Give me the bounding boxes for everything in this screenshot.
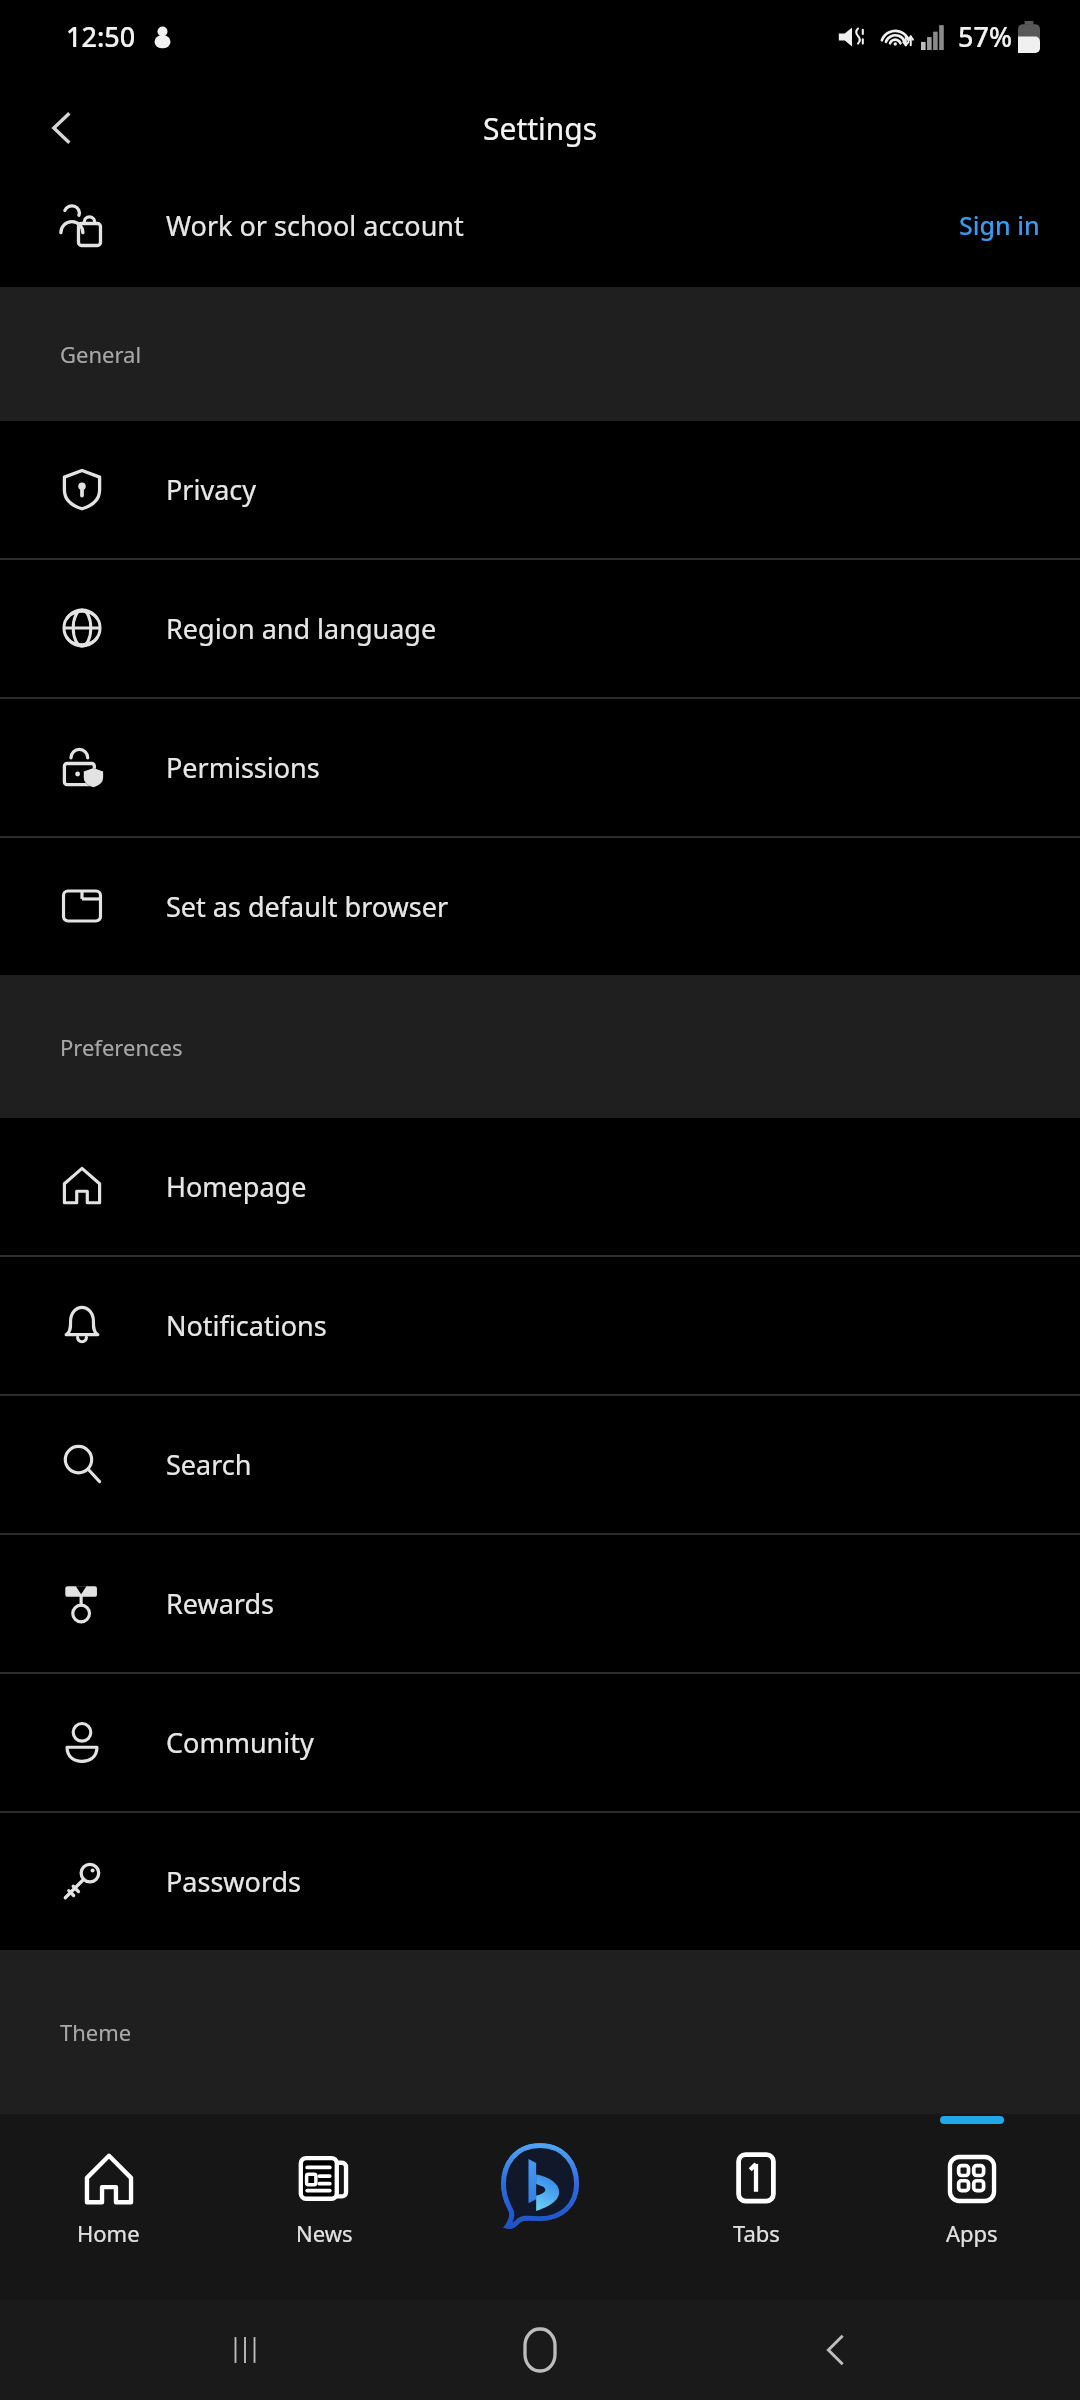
button[interactable]: Homepage xyxy=(0,1118,1080,1255)
staticText: Privacy xyxy=(166,471,257,508)
staticText: Work or school account xyxy=(166,207,464,244)
staticText: Theme xyxy=(60,2017,132,2047)
staticText: Search xyxy=(166,1446,252,1483)
staticText: Apps xyxy=(946,2218,998,2248)
button[interactable]: Search xyxy=(0,1396,1080,1533)
button[interactable]: Work or school account xyxy=(0,184,1080,287)
button[interactable]: Permissions xyxy=(0,699,1080,836)
staticText: General xyxy=(60,339,142,369)
staticText: 57% xyxy=(958,18,1012,55)
button[interactable]: Passwords xyxy=(0,1813,1080,1950)
staticText: Sign in xyxy=(959,208,1040,242)
staticText: Set as default browser xyxy=(166,888,449,925)
button[interactable]: Home xyxy=(490,2300,590,2400)
staticText: 12:50 xyxy=(66,18,136,55)
staticText: Preferences xyxy=(60,1032,183,1062)
button[interactable]: Back xyxy=(20,86,104,170)
button[interactable]: Copilot xyxy=(432,2114,648,2300)
button[interactable]: Home xyxy=(0,2114,216,2300)
staticText: Passwords xyxy=(166,1863,302,1900)
button[interactable]: Tabs xyxy=(648,2114,864,2300)
staticText: Homepage xyxy=(166,1168,307,1205)
button[interactable]: Sign in xyxy=(959,208,1040,242)
staticText: Tabs xyxy=(733,2218,780,2248)
button[interactable]: Notifications xyxy=(0,1257,1080,1394)
staticText: Rewards xyxy=(166,1585,274,1622)
button[interactable]: Back xyxy=(785,2300,885,2400)
staticText: Notifications xyxy=(166,1307,327,1344)
staticText: Community xyxy=(166,1724,314,1761)
button[interactable]: Set as default browser xyxy=(0,838,1080,975)
button[interactable]: Community xyxy=(0,1674,1080,1811)
button[interactable]: Region and language xyxy=(0,560,1080,697)
staticText: Region and language xyxy=(166,610,437,647)
button[interactable]: Recents xyxy=(195,2300,295,2400)
button[interactable]: News xyxy=(216,2114,432,2300)
button[interactable]: Apps xyxy=(864,2114,1080,2300)
staticText: Settings xyxy=(483,108,598,149)
staticText: Home xyxy=(77,2218,140,2248)
staticText: Permissions xyxy=(166,749,320,786)
staticText: News xyxy=(296,2218,353,2248)
button[interactable]: Rewards xyxy=(0,1535,1080,1672)
button[interactable]: Privacy xyxy=(0,421,1080,558)
